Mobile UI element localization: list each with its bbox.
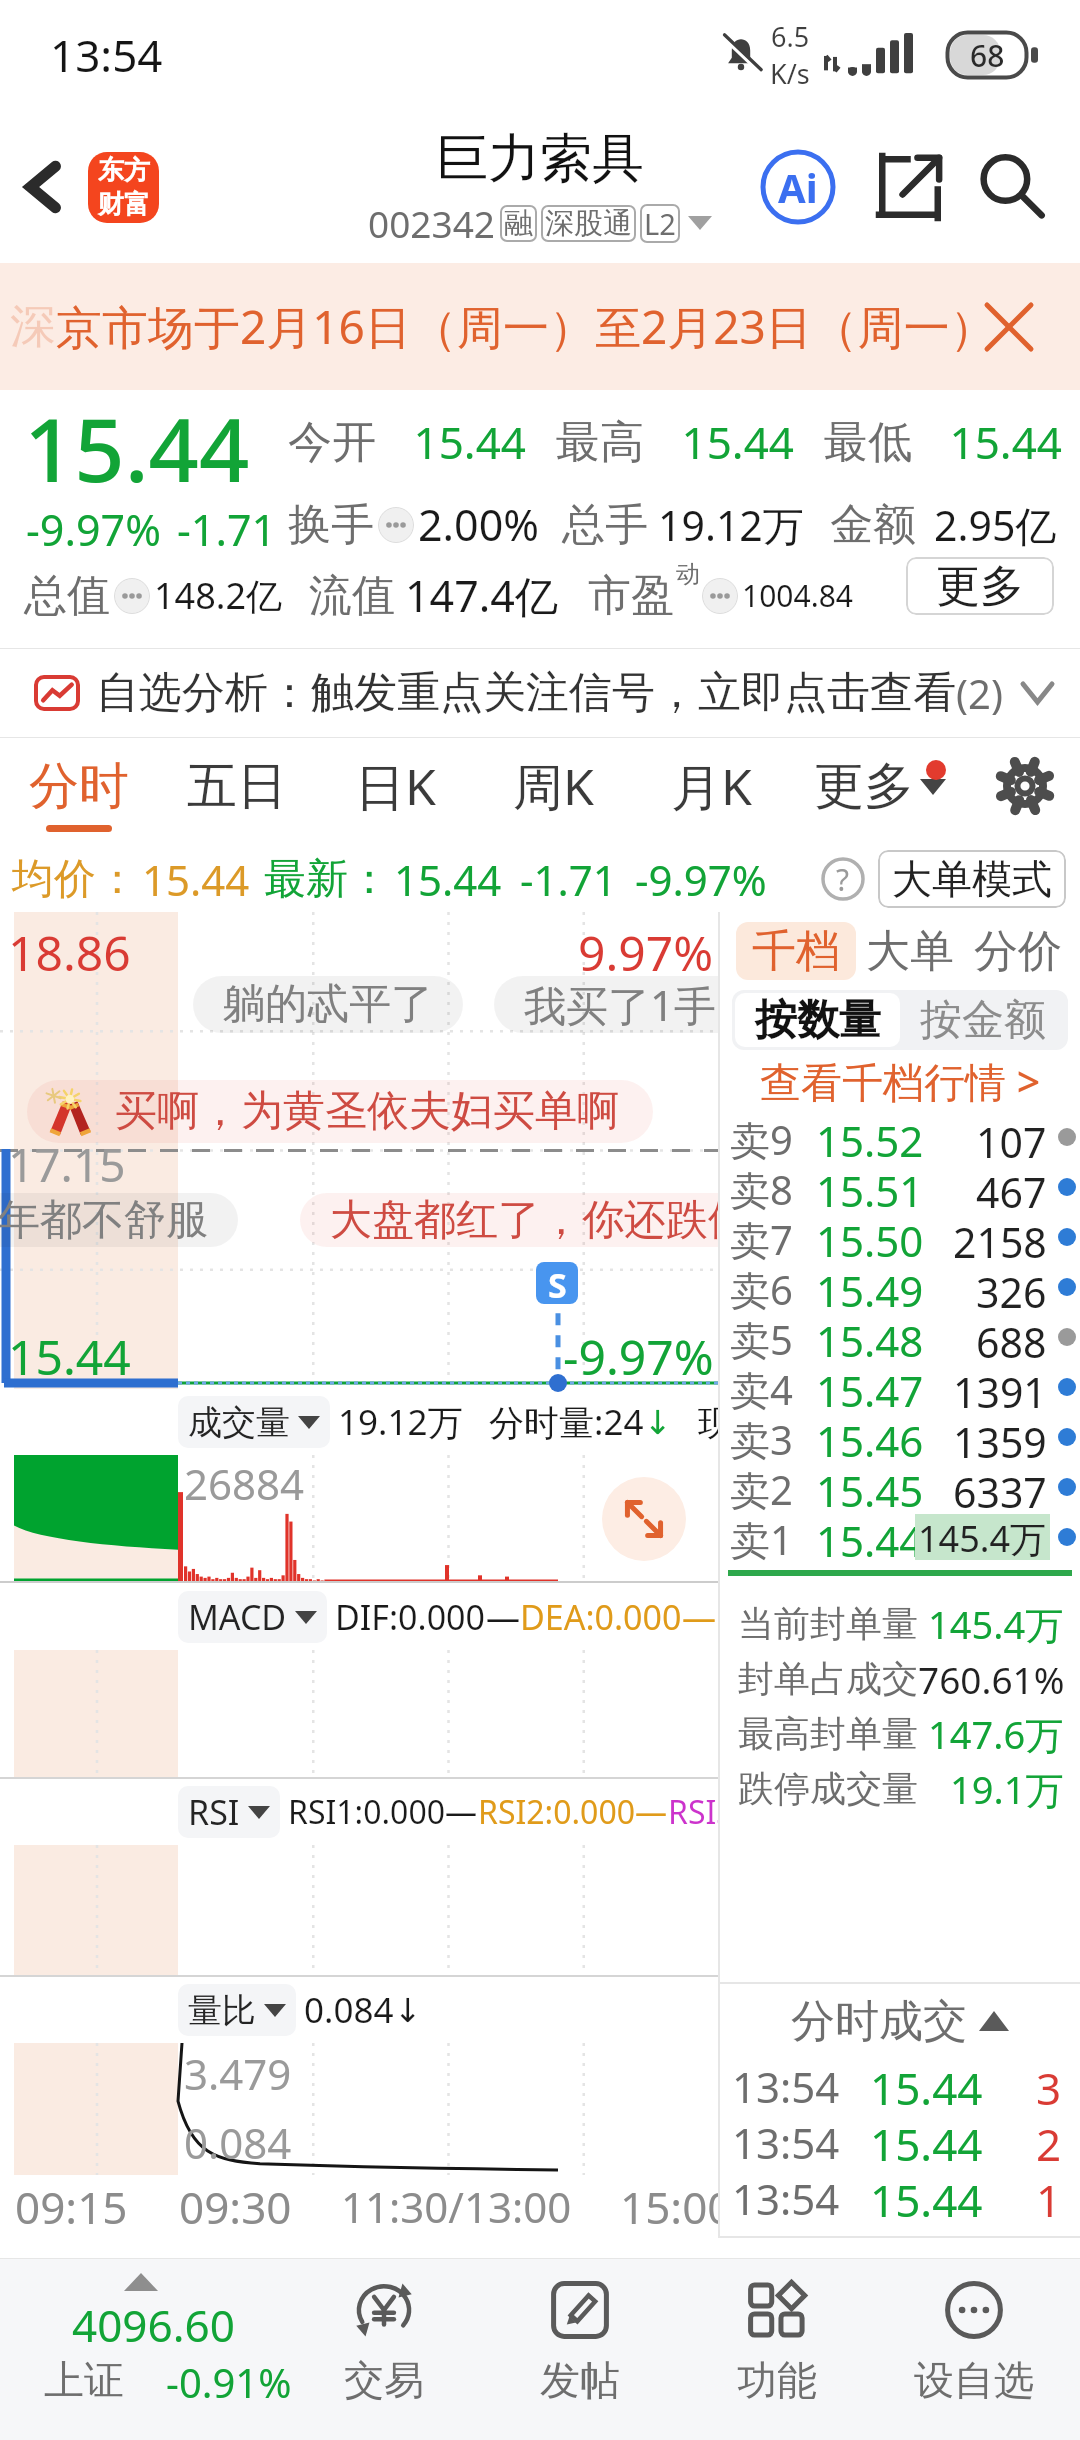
button[interactable]: 卖2: [720, 1462, 1080, 1512]
button[interactable]: 成交量: [178, 1396, 330, 1448]
staticText: 148.2亿: [154, 571, 283, 620]
button[interactable]: 按金额: [900, 993, 1065, 1047]
staticText: 15.44: [142, 851, 250, 908]
button[interactable]: Back: [4, 148, 82, 226]
staticText: DIF:0.000: [335, 1594, 486, 1640]
staticText: —: [635, 1790, 668, 1834]
staticText: 更多: [814, 755, 914, 818]
staticText: 15.44: [870, 2114, 983, 2170]
button[interactable]: 卖6: [720, 1262, 1080, 1312]
staticText: 自选分析：触发重点关注信号，立即点击查看: [96, 666, 956, 720]
button[interactable]: 卖1: [720, 1512, 1080, 1562]
staticText: 东方: [98, 154, 150, 187]
button[interactable]: 卖3: [720, 1412, 1080, 1462]
staticText: 融: [504, 205, 533, 242]
staticText: 19.1万: [950, 1763, 1064, 1815]
staticText: 2.95亿: [934, 497, 1057, 553]
staticText: 最高封单量: [738, 1711, 918, 1756]
staticText: 深股通: [545, 205, 632, 242]
staticText: RSI: [188, 1789, 240, 1835]
button[interactable]: 13:54: [720, 2058, 1080, 2114]
staticText: 市盈: [588, 569, 674, 623]
staticText: 002342: [368, 198, 495, 248]
button[interactable]: 千档: [736, 922, 856, 980]
staticText: (2): [956, 666, 1003, 720]
button[interactable]: 交易: [286, 2259, 482, 2440]
button[interactable]: 功能: [678, 2259, 875, 2440]
staticText: 15.44: [870, 2058, 983, 2114]
button[interactable]: Share: [866, 143, 954, 231]
staticText: 3: [1036, 2058, 1062, 2114]
staticText: 上证: [44, 2355, 124, 2405]
staticText: 15.44: [912, 412, 1062, 472]
button[interactable]: 按数量: [735, 993, 900, 1047]
staticText: 量比: [188, 1989, 256, 2032]
button[interactable]: 查看千档行情 >: [720, 1050, 1080, 1112]
staticText: 13:54: [732, 2170, 840, 2226]
button[interactable]: 量比: [178, 1984, 296, 2036]
staticText: 1004.84: [742, 575, 853, 616]
staticText: -9.97%: [26, 500, 161, 559]
staticText: 1359: [953, 1414, 1047, 1460]
button[interactable]: 更多: [906, 557, 1054, 615]
button[interactable]: 卖5: [720, 1312, 1080, 1362]
button[interactable]: Chart settings: [970, 738, 1080, 846]
staticText: 卖2: [730, 1462, 793, 1512]
button[interactable]: 自选分析：触发重点关注信号，立即点击查看: [0, 649, 1080, 737]
button[interactable]: 卖7: [720, 1212, 1080, 1262]
button[interactable]: 卖4: [720, 1362, 1080, 1412]
staticText: 查看千档行情 >: [760, 1053, 1041, 1109]
button[interactable]: 五日: [158, 738, 316, 846]
staticText: 深: [10, 298, 56, 356]
staticText: 15.49: [816, 1262, 924, 1312]
staticText: 日K: [355, 752, 436, 820]
button[interactable]: AI assistant: [754, 143, 842, 231]
staticText: 107: [976, 1114, 1047, 1160]
staticText: MACD: [188, 1594, 287, 1640]
staticText: Ai: [778, 160, 818, 214]
button[interactable]: 分价: [964, 915, 1072, 987]
button[interactable]: 发帖: [482, 2259, 678, 2440]
staticText: -0.91%: [166, 2355, 292, 2409]
button[interactable]: Help: [818, 854, 868, 904]
button[interactable]: 日K: [316, 738, 474, 846]
staticText: 现量:: [698, 1398, 718, 1446]
button[interactable]: 卖8: [720, 1162, 1080, 1212]
staticText: 千档: [752, 924, 840, 979]
staticText: 今开: [288, 415, 376, 470]
staticText: 15.52: [816, 1112, 924, 1162]
button[interactable]: 卖9: [720, 1112, 1080, 1162]
staticText: 交易: [344, 2355, 424, 2405]
button[interactable]: 4096.60: [0, 2259, 286, 2440]
button[interactable]: 更多: [790, 738, 970, 846]
button[interactable]: 13:54: [720, 2170, 1080, 2226]
button[interactable]: MACD: [178, 1591, 327, 1643]
staticText: 过年都不舒服: [0, 1194, 208, 1247]
button[interactable]: 周K: [474, 738, 632, 846]
button[interactable]: 月K: [632, 738, 790, 846]
staticText: 18.86: [8, 920, 131, 985]
staticText: 功能: [737, 2355, 817, 2405]
staticText: 15:00: [620, 2177, 718, 2237]
staticText: 15.44: [376, 412, 526, 472]
staticText: 3.479: [184, 2045, 292, 2102]
button[interactable]: 13:54: [720, 2114, 1080, 2170]
staticText: -9.97%: [563, 1324, 714, 1389]
staticText: DEA:0.000: [520, 1594, 682, 1640]
button[interactable]: 分时成交: [720, 1984, 1080, 2058]
button[interactable]: 设自选: [875, 2259, 1072, 2440]
staticText: 1391: [953, 1364, 1047, 1410]
button[interactable]: Search: [968, 143, 1056, 231]
staticText: 15.47: [816, 1362, 924, 1412]
button[interactable]: 分时: [0, 738, 158, 846]
staticText: 最新：: [264, 853, 390, 906]
button[interactable]: RSI: [178, 1786, 280, 1838]
button[interactable]: East Money home: [88, 152, 159, 223]
staticText: 京市场于2月16日（周一）至2月23日（周一）: [56, 295, 996, 358]
staticText: 动: [676, 559, 700, 589]
button[interactable]: 大单: [856, 915, 964, 987]
button[interactable]: 大单模式: [878, 850, 1066, 908]
button[interactable]: Close banner: [974, 292, 1044, 362]
button[interactable]: Fullscreen chart: [602, 1477, 686, 1561]
staticText: 147.4亿: [405, 566, 558, 625]
